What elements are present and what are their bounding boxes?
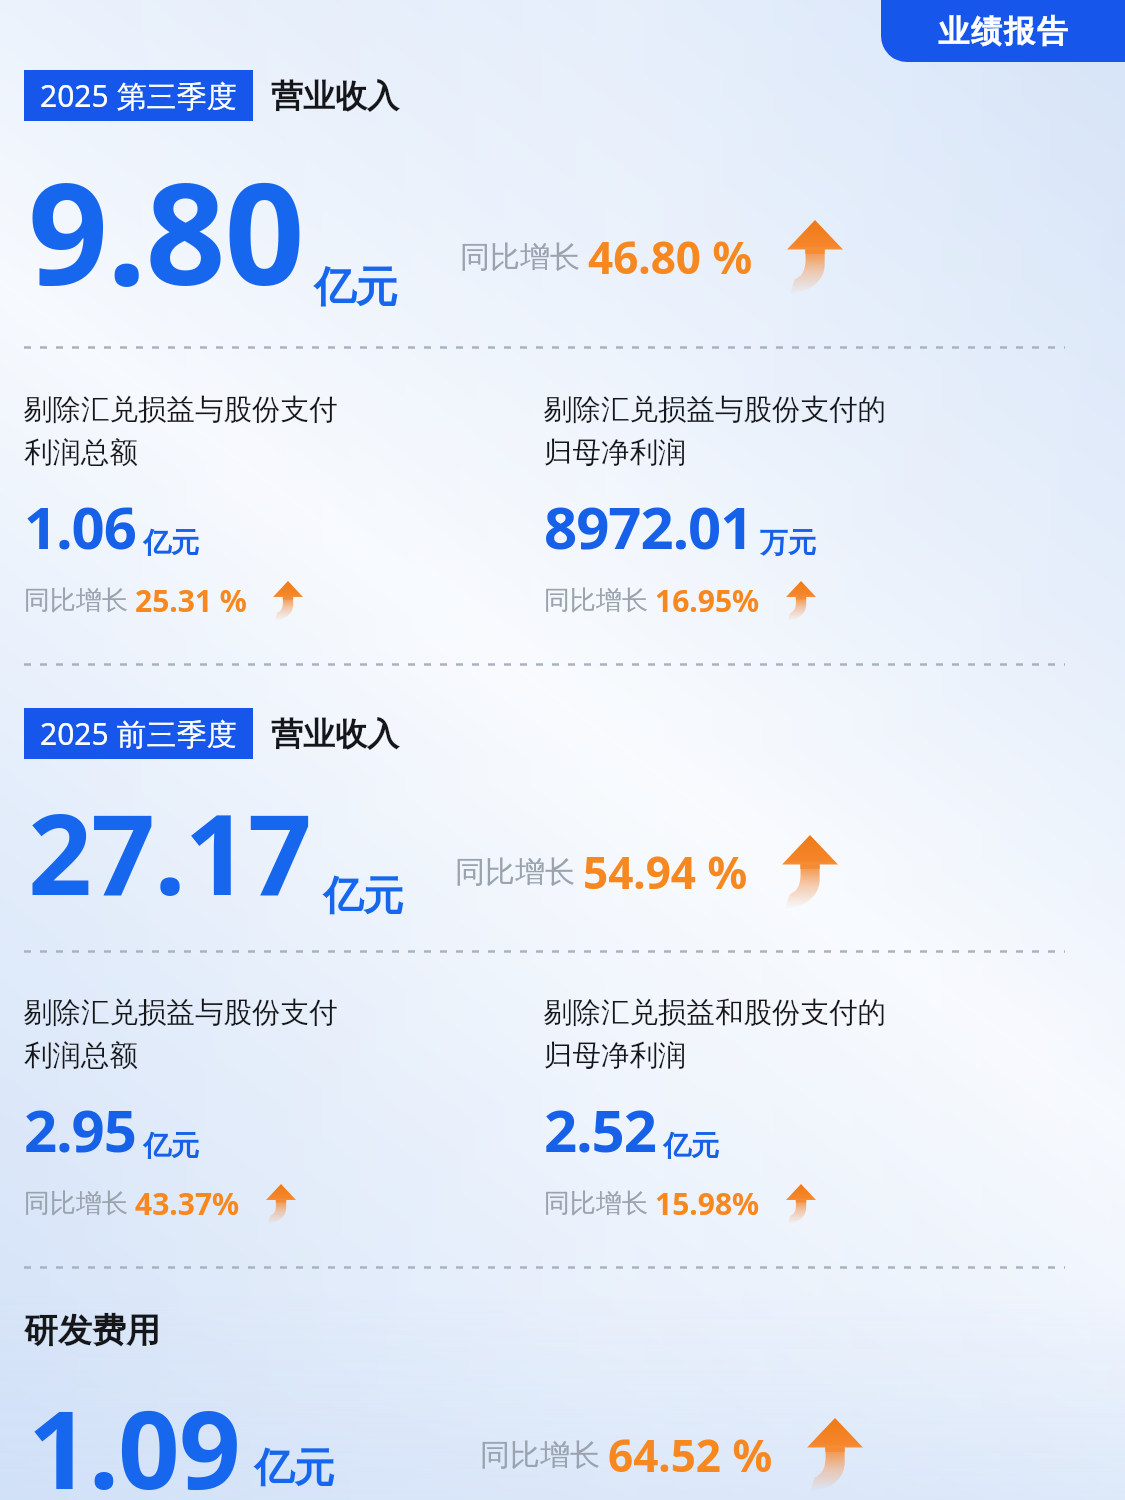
staticText: 业绩报告 — [937, 12, 1069, 51]
staticText: 亿元 — [314, 261, 398, 314]
staticText: 利润总额 — [24, 435, 138, 471]
staticText: 46.80 % — [588, 227, 753, 287]
staticText: 利润总额 — [24, 1038, 138, 1074]
staticText: 剔除汇兑损益与股份支付 — [24, 392, 338, 428]
button[interactable]: 业绩报告 — [881, 0, 1125, 62]
other: 增长 — [786, 581, 816, 621]
staticText: 43.37% — [135, 1183, 240, 1224]
other: 增长 — [782, 835, 838, 909]
staticText: 27.17 — [28, 775, 311, 928]
staticText: 同比增长 — [455, 853, 575, 891]
staticText: 16.95% — [655, 580, 760, 621]
staticText: 1.09 — [28, 1374, 240, 1500]
staticText: 54.94 % — [583, 842, 748, 902]
staticText: 剔除汇兑损益与股份支付 — [24, 995, 338, 1031]
staticText: 亿元 — [143, 1128, 199, 1163]
other: 增长 — [266, 1184, 296, 1224]
staticText: 亿元 — [323, 870, 403, 920]
staticText: 研发费用 — [24, 1309, 160, 1352]
staticText: 亿元 — [143, 525, 199, 560]
staticText: 15.98% — [655, 1183, 760, 1224]
staticText: 营业收入 — [271, 714, 399, 754]
staticText: 同比增长 — [24, 584, 128, 617]
staticText: 剔除汇兑损益与股份支付的 — [544, 392, 886, 428]
other: 增长 — [807, 1418, 863, 1492]
other: 增长 — [273, 581, 303, 621]
staticText: 同比增长 — [24, 1187, 128, 1220]
staticText: 万元 — [760, 525, 816, 560]
staticText: 8972.01 — [544, 487, 753, 566]
other: 增长 — [787, 220, 843, 294]
staticText: 2.52 — [544, 1090, 656, 1169]
staticText: 营业收入 — [271, 76, 399, 116]
staticText: 25.31 % — [135, 580, 247, 621]
button[interactable]: 2025 前三季度 — [24, 708, 253, 759]
staticText: 同比增长 — [544, 584, 648, 617]
staticText: 9.80 — [28, 135, 304, 326]
staticText: 同比增长 — [480, 1436, 600, 1474]
staticText: 同比增长 — [544, 1187, 648, 1220]
staticText: 亿元 — [663, 1128, 719, 1163]
staticText: 归母净利润 — [544, 1038, 687, 1074]
staticText: 2025 前三季度 — [40, 713, 237, 754]
staticText: 1.06 — [24, 487, 136, 566]
staticText: 亿元 — [254, 1442, 334, 1492]
other: 增长 — [786, 1184, 816, 1224]
staticText: 剔除汇兑损益和股份支付的 — [544, 995, 886, 1031]
staticText: 2.95 — [24, 1090, 136, 1169]
button[interactable]: 2025 第三季度 — [24, 70, 253, 121]
staticText: 64.52 % — [608, 1425, 773, 1485]
staticText: 归母净利润 — [544, 435, 687, 471]
staticText: 2025 第三季度 — [40, 75, 237, 116]
staticText: 同比增长 — [460, 238, 580, 276]
